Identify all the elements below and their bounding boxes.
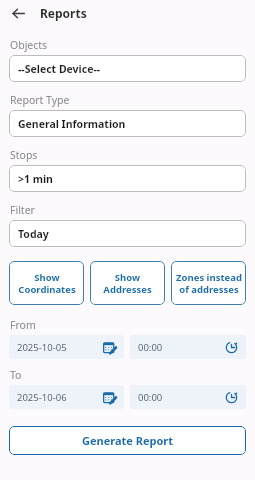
button[interactable]: General Information (9, 110, 246, 137)
button[interactable]: Zones instead of addresses (171, 261, 246, 305)
staticText: 00:00 (138, 391, 163, 404)
other: Pick date (103, 341, 116, 354)
staticText: 2025-10-05 (17, 341, 67, 354)
button[interactable]: Show Coordinates (9, 261, 84, 305)
button[interactable]: 2025-10-05 (9, 335, 124, 359)
staticText: 00:00 (138, 341, 163, 354)
staticText: Objects (10, 38, 48, 52)
staticText: Report Type (10, 93, 70, 107)
staticText: General Information (18, 117, 126, 131)
staticText: 2025-10-06 (17, 391, 67, 404)
other: Pick time (225, 341, 238, 354)
staticText: Show Coordinates (18, 271, 76, 296)
staticText: To (10, 368, 22, 382)
staticText: Show Addresses (103, 271, 152, 296)
staticText: Stops (10, 148, 38, 162)
button[interactable]: 00:00 (130, 385, 246, 409)
other: Pick time (225, 391, 238, 404)
button[interactable]: 2025-10-06 (9, 385, 124, 409)
staticText: From (10, 318, 36, 332)
staticText: Generate Report (82, 433, 174, 448)
button[interactable]: Generate Report (9, 426, 246, 455)
staticText: Zones instead of addresses (176, 271, 242, 296)
button[interactable]: Back (8, 3, 28, 23)
button[interactable]: Show Addresses (90, 261, 165, 305)
staticText: Filter (10, 203, 35, 217)
other: Pick date (103, 391, 116, 404)
button[interactable]: >1 min (9, 165, 246, 192)
button[interactable]: Today (9, 220, 246, 247)
staticText: Today (18, 227, 49, 241)
staticText: Reports (40, 5, 87, 21)
button[interactable]: 00:00 (130, 335, 246, 359)
staticText: --Select Device-- (18, 62, 101, 76)
staticText: >1 min (18, 172, 53, 186)
button[interactable]: --Select Device-- (9, 55, 246, 82)
